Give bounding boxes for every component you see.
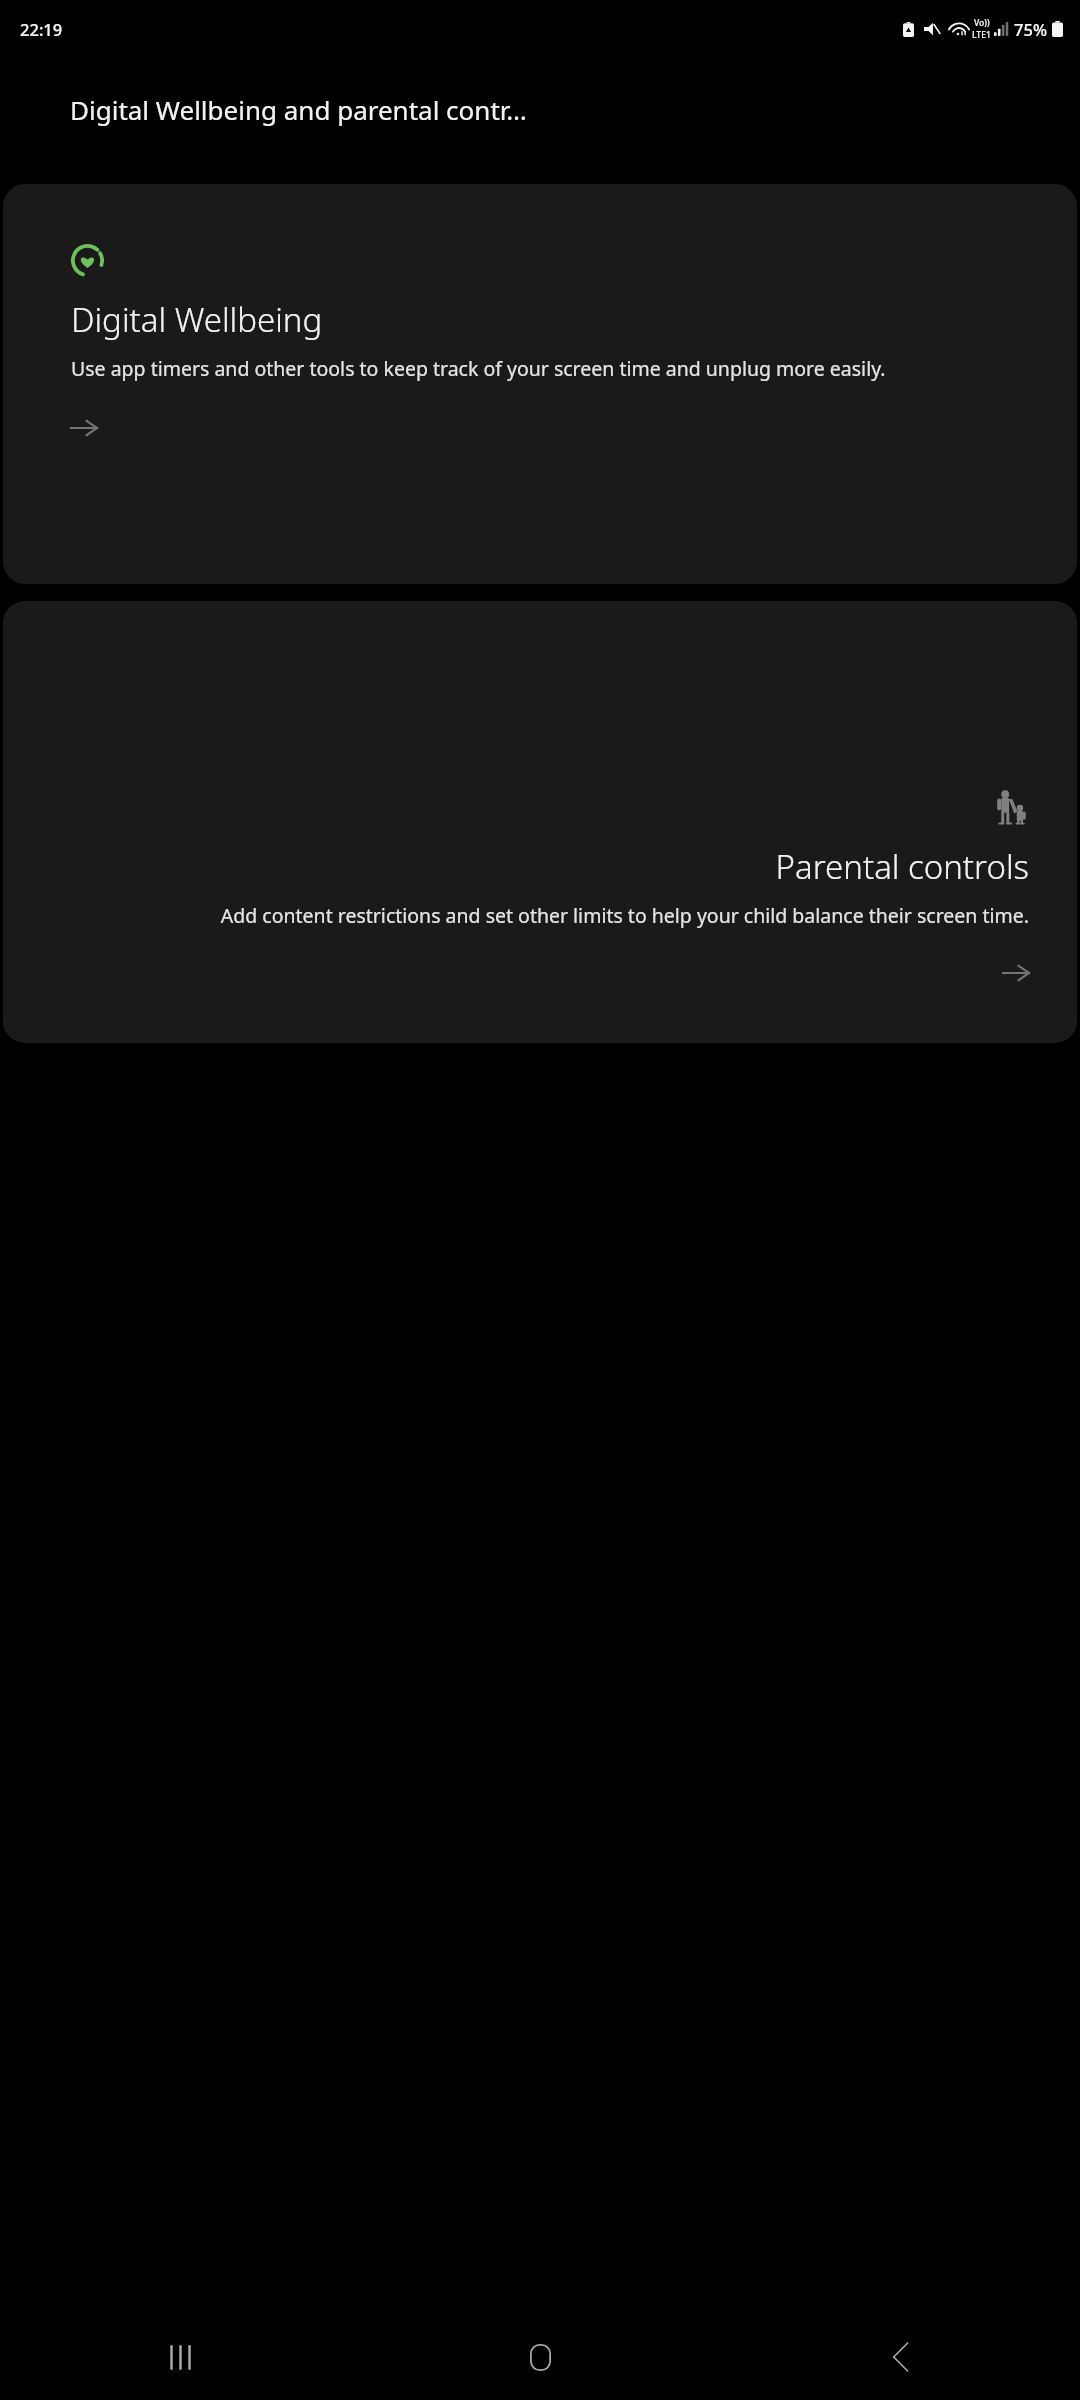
staticText: LTE1 — [972, 29, 991, 41]
button[interactable]: Home — [360, 2314, 720, 2400]
staticText: Digital Wellbeing — [71, 297, 323, 342]
staticText: 75% — [1014, 18, 1047, 40]
button[interactable]: Digital Wellbeing — [3, 184, 1077, 584]
button[interactable]: Recents — [0, 2314, 360, 2400]
button[interactable]: Open Digital Wellbeing — [71, 406, 115, 450]
staticText: 22:19 — [20, 18, 63, 40]
staticText: Digital Wellbeing and parental contr… — [70, 92, 527, 127]
button[interactable]: Open Parental controls — [985, 951, 1029, 995]
staticText: Add content restrictions and set other l… — [220, 902, 1029, 929]
button[interactable]: Parental controls — [3, 601, 1077, 1043]
button[interactable]: Back — [720, 2314, 1080, 2400]
staticText: Parental controls — [775, 844, 1029, 889]
staticText: Vo)) — [974, 17, 990, 29]
staticText: Use app timers and other tools to keep t… — [71, 355, 886, 382]
